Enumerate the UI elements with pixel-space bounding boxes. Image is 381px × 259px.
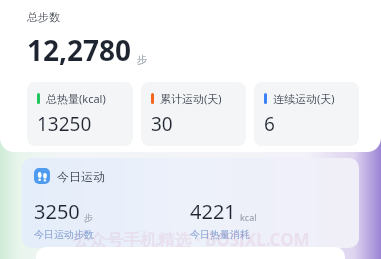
staticText: 12,2780 bbox=[27, 31, 132, 69]
button[interactable]: 累计运动(天) bbox=[141, 82, 246, 146]
staticText: 4221 bbox=[190, 198, 236, 225]
staticText: 今日运动步数 bbox=[34, 228, 94, 241]
staticText: 总步数 bbox=[27, 10, 60, 24]
button[interactable]: 连续运动(天) bbox=[254, 82, 359, 146]
staticText: 连续运动(天) bbox=[273, 91, 335, 106]
other: 今日运动 bbox=[34, 168, 50, 184]
staticText: 总热量(kcal) bbox=[46, 91, 106, 106]
staticText: 今日热量消耗 bbox=[190, 228, 250, 241]
staticText: 13250 bbox=[37, 111, 92, 137]
staticText: 今日运动 bbox=[57, 169, 105, 184]
staticText: 步 bbox=[137, 53, 147, 66]
staticText: 累计运动(天) bbox=[160, 91, 222, 106]
staticText: 公众号手机精选 · BOSJXL.COM bbox=[72, 228, 310, 251]
staticText: 6 bbox=[264, 111, 275, 137]
staticText: 30 bbox=[151, 111, 173, 137]
button[interactable]: 总步数 bbox=[0, 0, 381, 152]
button[interactable]: 今日运动 bbox=[22, 158, 359, 248]
staticText: 3250 bbox=[34, 198, 80, 225]
staticText: kcal bbox=[240, 211, 257, 223]
button[interactable]: 总热量(kcal) bbox=[27, 82, 133, 146]
staticText: 步 bbox=[84, 212, 93, 223]
